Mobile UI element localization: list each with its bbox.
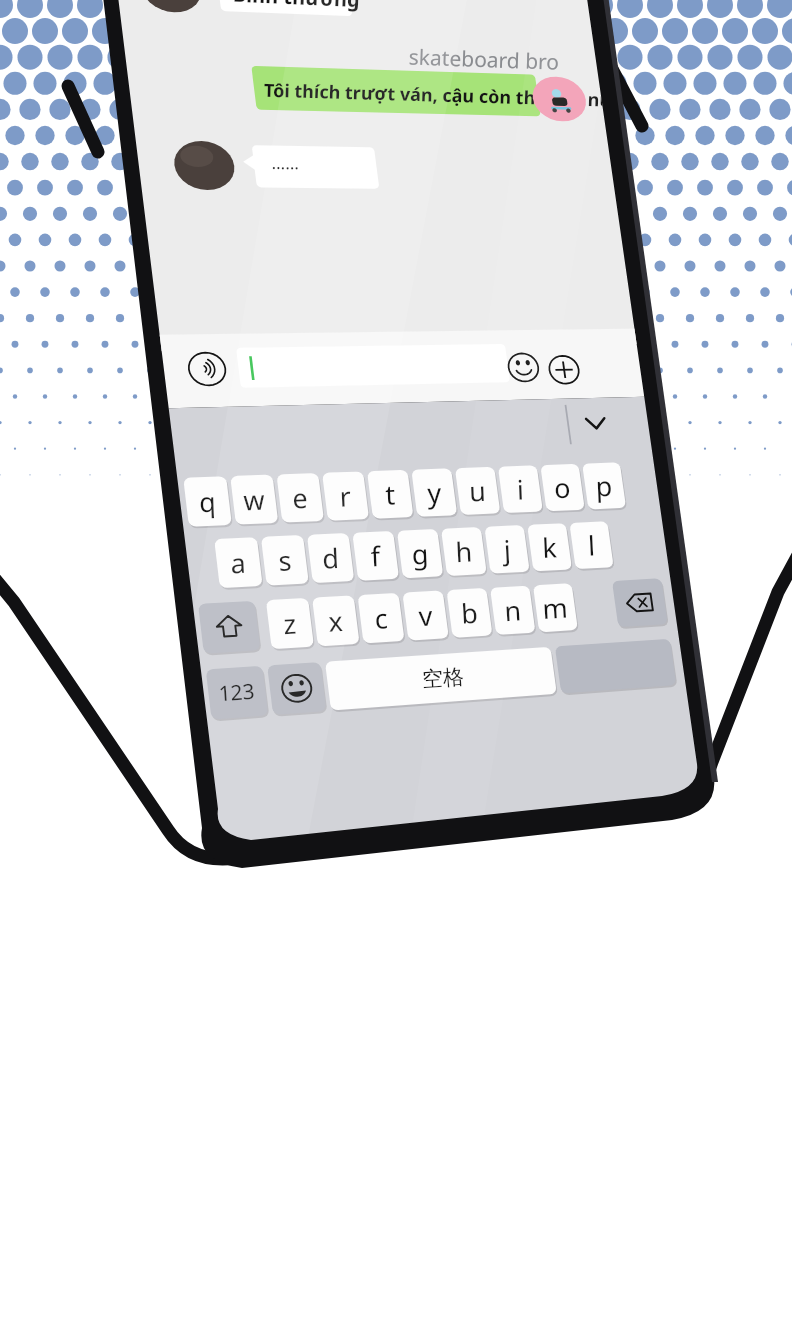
- button[interactable]: Chat conversation phone mockup: [0, 0, 792, 1320]
